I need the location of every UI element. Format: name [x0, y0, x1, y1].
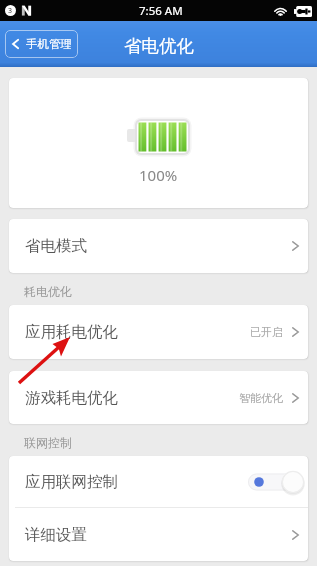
staticText: 联网控制: [24, 435, 72, 450]
button[interactable]: 应用耗电优化: [9, 305, 308, 359]
staticText: 手机管理: [26, 37, 71, 51]
staticText: 智能优化: [239, 391, 283, 405]
staticText: 100%: [139, 165, 178, 185]
staticText: 应用耗电优化: [25, 322, 118, 342]
button[interactable]: 应用联网控制: [9, 456, 308, 507]
staticText: 3: [8, 6, 13, 16]
button[interactable]: 手机管理: [5, 30, 78, 58]
button[interactable]: Toggle app network control: [248, 470, 304, 494]
staticText: 游戏耗电优化: [25, 388, 118, 408]
button[interactable]: 省电模式: [9, 219, 308, 273]
staticText: 已开启: [250, 325, 283, 339]
button[interactable]: 游戏耗电优化: [9, 371, 308, 424]
staticText: 省电模式: [25, 236, 87, 256]
staticText: 详细设置: [25, 525, 87, 545]
button[interactable]: 详细设置: [9, 508, 308, 561]
staticText: 省电优化: [124, 35, 194, 57]
staticText: 耗电优化: [24, 284, 72, 299]
staticText: 7:56 AM: [139, 3, 183, 19]
staticText: 应用联网控制: [25, 472, 118, 492]
